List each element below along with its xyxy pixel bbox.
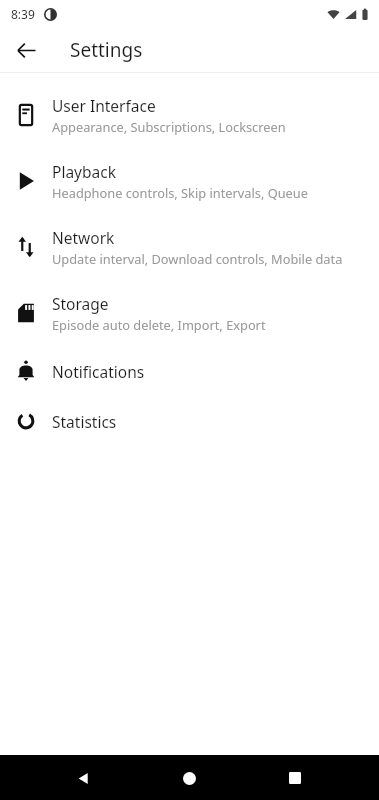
staticText: Playback [52,161,116,182]
staticText: Statistics [52,411,117,432]
button[interactable]: Notifications [0,346,379,396]
button[interactable]: Storage [0,280,379,346]
button[interactable]: Recent apps [273,756,317,800]
staticText: Notifications [52,361,145,382]
staticText: 8:39 [11,6,35,22]
staticText: User Interface [52,95,156,116]
button[interactable]: Network [0,214,379,280]
staticText: Appearance, Subscriptions, Lockscreen [52,118,286,135]
button[interactable]: Statistics [0,396,379,446]
button[interactable]: Playback [0,148,379,214]
staticText: Network [52,227,115,248]
button[interactable]: Back [61,756,105,800]
button[interactable]: User Interface [0,82,379,148]
staticText: Storage [52,293,109,314]
button[interactable]: Home [167,756,211,800]
staticText: Settings [70,37,143,63]
button[interactable]: Back [8,32,44,68]
staticText: Update interval, Download controls, Mobi… [52,250,343,267]
staticText: Headphone controls, Skip intervals, Queu… [52,184,308,201]
staticText: Episode auto delete, Import, Export [52,316,266,333]
